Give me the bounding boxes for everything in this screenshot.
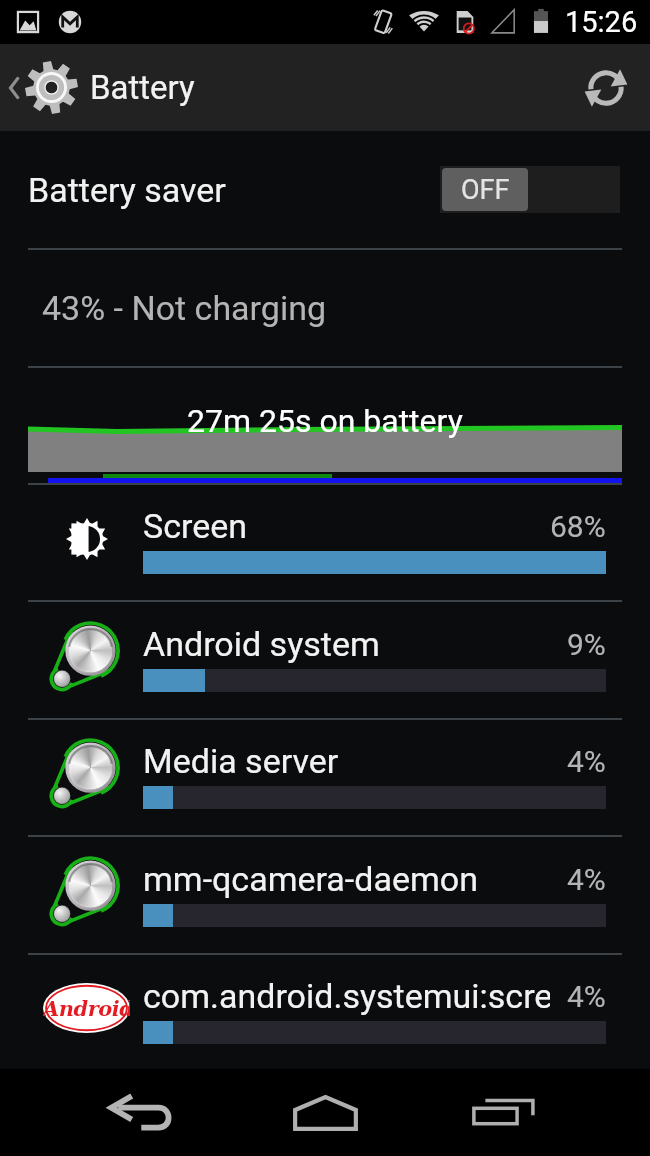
button[interactable]: Battery saver bbox=[0, 131, 650, 248]
staticText: Media server bbox=[143, 741, 339, 781]
staticText: 4% bbox=[567, 744, 606, 779]
button[interactable]: 27m 25s on battery bbox=[0, 368, 650, 483]
button[interactable]: Recent apps bbox=[442, 1069, 572, 1156]
staticText: 4% bbox=[567, 862, 606, 897]
staticText: Screen bbox=[143, 506, 248, 546]
button[interactable]: Media server bbox=[0, 720, 650, 835]
button[interactable]: Back bbox=[78, 1069, 210, 1156]
button[interactable]: Refresh bbox=[562, 44, 650, 131]
staticText: com.android.systemui:scree bbox=[143, 976, 550, 1016]
button[interactable]: Android system bbox=[0, 602, 650, 718]
button[interactable]: Screen bbox=[0, 485, 650, 600]
staticText: Android system bbox=[143, 624, 380, 664]
staticText: 9% bbox=[567, 627, 606, 662]
staticText: 4% bbox=[567, 979, 606, 1014]
staticText: 68% bbox=[550, 509, 606, 544]
staticText: Battery saver bbox=[28, 170, 226, 210]
staticText: Battery bbox=[90, 68, 195, 107]
staticText: 15:26 bbox=[565, 5, 638, 39]
staticText: OFF bbox=[461, 174, 510, 206]
staticText: mm-qcamera-daemon bbox=[143, 859, 478, 899]
button[interactable]: 43% - Not charging bbox=[0, 250, 650, 366]
staticText: 27m 25s on battery bbox=[187, 402, 463, 440]
staticText: Android bbox=[43, 996, 130, 1021]
button[interactable]: Android bbox=[0, 955, 650, 1069]
button[interactable]: Home bbox=[260, 1069, 390, 1156]
button[interactable]: mm-qcamera-daemon bbox=[0, 837, 650, 953]
button[interactable]: Battery bbox=[0, 44, 207, 131]
staticText: 43% - Not charging bbox=[42, 288, 327, 328]
